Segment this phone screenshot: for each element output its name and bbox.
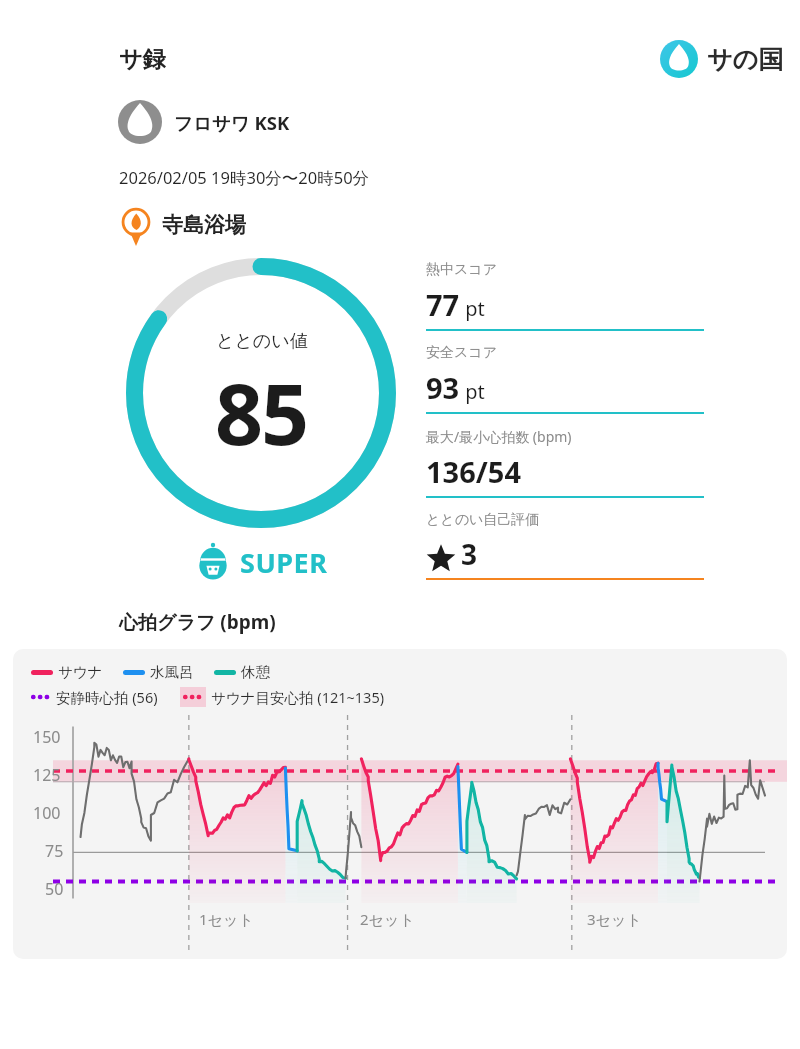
staticText: 安静時心拍 (56) bbox=[56, 687, 158, 707]
staticText: 136/54 bbox=[426, 452, 521, 491]
staticText: サの国 bbox=[707, 44, 784, 75]
staticText: 心拍グラフ (bpm) bbox=[119, 609, 276, 635]
staticText: フロサワ KSK bbox=[174, 110, 290, 135]
staticText: ととのい自己評価 bbox=[426, 511, 540, 529]
staticText: 75 bbox=[45, 840, 64, 862]
button[interactable]: 寺島浴場 bbox=[118, 207, 246, 243]
staticText: 125 bbox=[33, 764, 61, 786]
staticText: サ録 bbox=[119, 45, 166, 74]
staticText: 50 bbox=[45, 878, 64, 900]
staticText: 3 bbox=[461, 535, 478, 573]
staticText: サウナ目安心拍 (121~135) bbox=[211, 687, 385, 707]
staticText: 最大/最小心拍数 (bpm) bbox=[426, 427, 572, 446]
staticText: 93 bbox=[426, 368, 460, 407]
staticText: 寺島浴場 bbox=[162, 212, 246, 238]
button[interactable]: 最大/最小心拍数 (bpm) bbox=[426, 427, 704, 511]
staticText: 3セット bbox=[587, 909, 642, 929]
button[interactable]: サの国 home bbox=[660, 40, 784, 78]
button[interactable]: 安全スコア bbox=[426, 344, 704, 427]
staticText: 水風呂 bbox=[150, 663, 194, 681]
staticText: 150 bbox=[33, 726, 61, 748]
staticText: pt bbox=[460, 378, 485, 405]
staticText: サウナ bbox=[58, 663, 103, 681]
button[interactable]: 熱中スコア bbox=[426, 261, 704, 344]
staticText: 1セット bbox=[199, 909, 254, 929]
button[interactable]: SUPER bbox=[194, 543, 328, 581]
staticText: 安全スコア bbox=[426, 344, 497, 362]
button[interactable]: ととのい自己評価 bbox=[426, 511, 704, 593]
staticText: 77 bbox=[426, 285, 460, 324]
staticText: 休憩 bbox=[241, 663, 270, 681]
staticText: SUPER bbox=[240, 544, 328, 581]
button[interactable]: フロサワ KSK bbox=[118, 100, 290, 144]
staticText: pt bbox=[460, 295, 485, 322]
staticText: 2026/02/05 19時30分〜20時50分 bbox=[119, 166, 370, 189]
button[interactable]: サウナ bbox=[13, 649, 787, 959]
staticText: 85 bbox=[215, 355, 308, 469]
staticText: 100 bbox=[33, 802, 61, 824]
staticText: 2セット bbox=[360, 909, 415, 929]
staticText: ととのい値 bbox=[216, 330, 308, 353]
staticText: 熱中スコア bbox=[426, 261, 497, 279]
